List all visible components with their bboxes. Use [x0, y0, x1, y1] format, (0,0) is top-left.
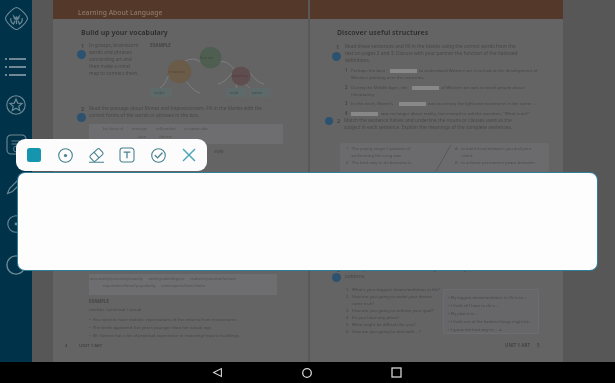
staticText: 1	[345, 67, 348, 73]
button[interactable]: Eraser	[83, 142, 109, 168]
staticText: sculpt	[154, 90, 165, 95]
button[interactable]: Brush size	[6, 214, 26, 234]
staticText: 1	[81, 42, 85, 49]
button[interactable]: Pen	[52, 142, 78, 168]
button[interactable]: Navigation item	[5, 72, 28, 78]
staticText: • You need to have realistic expectation…	[89, 316, 241, 338]
staticText: of Western art was to teach people about	[441, 84, 525, 90]
staticText: EXAMPLE	[150, 42, 171, 48]
staticText: Read these sentences and fill in the bla…	[345, 43, 518, 64]
staticText: • My biggest dream/ambition in life is t…	[448, 295, 533, 332]
button[interactable]: Notes	[5, 133, 27, 155]
staticText: Learning About Language	[78, 8, 163, 17]
staticText: creativity	[168, 69, 186, 74]
staticText: 1 The young singer's passion of performi…	[346, 146, 412, 165]
staticText: EXAMPLE	[89, 298, 109, 304]
button[interactable]: Pen tool	[4, 175, 26, 197]
staticText: During the Middle Ages, the	[351, 84, 408, 90]
button[interactable]: Text	[114, 142, 140, 168]
button[interactable]: Home	[295, 362, 319, 383]
staticText: Perhaps the best	[351, 67, 386, 73]
staticText: 2	[345, 84, 348, 90]
staticText: Match the sentence halves and underline …	[344, 117, 513, 131]
button[interactable]: Close	[176, 142, 202, 168]
staticText: Build up your vocabulary	[81, 28, 168, 38]
staticText: was no longer about reality, but instead…	[381, 110, 531, 116]
button[interactable]: Note canvas	[18, 173, 597, 270]
staticText: 2	[81, 105, 85, 112]
button[interactable]: Recents	[384, 362, 408, 383]
staticText: UNIT 1 ART 5	[505, 342, 540, 348]
button[interactable]: Eraser	[5, 254, 27, 276]
staticText: fine art	[200, 55, 214, 60]
staticText: 2	[337, 117, 341, 124]
button[interactable]: Navigation item	[5, 64, 28, 70]
staticText: Claude Monet was a French painter who pa…	[83, 148, 225, 170]
staticText: In groups, brainstorm words and phrases …	[89, 42, 139, 77]
staticText: be fond of emerge influential in particu…	[103, 126, 209, 139]
button[interactable]: Back	[205, 362, 229, 383]
button[interactable]: App logo	[3, 5, 29, 31]
button[interactable]: Done	[145, 142, 171, 168]
staticText: accurately/precisely/exactly rank/grade/…	[90, 276, 236, 289]
staticText: to understand Western art is to look at …	[419, 67, 538, 73]
staticText: 4	[345, 110, 348, 116]
staticText: 3	[337, 266, 341, 273]
staticText: Christianity.	[351, 91, 375, 97]
button[interactable]: Colour	[21, 142, 47, 168]
staticText: tools	[230, 90, 239, 95]
staticText: Discover useful structures	[337, 28, 429, 38]
staticText: was to convey the light and movement in …	[428, 100, 536, 106]
staticText: A to build trust between you and your cl…	[455, 146, 535, 165]
staticText: 1	[336, 43, 340, 50]
staticText: 4	[65, 343, 68, 349]
staticText: Western painting over the centuries.	[351, 74, 425, 80]
staticText: paints	[252, 90, 263, 95]
staticText: Work in pairs. Make conversations using …	[345, 266, 522, 280]
button[interactable]: Navigation item	[5, 56, 28, 62]
staticText: Read the passage about Monet and Impress…	[89, 105, 263, 119]
staticText: 3	[345, 100, 348, 106]
button[interactable]: Favourites	[5, 94, 27, 116]
staticText: realistic / practical / actual	[89, 306, 142, 312]
staticText: painting	[232, 73, 248, 78]
staticText: In this work, Monet's	[351, 100, 394, 106]
staticText: UNIT 1 ART	[79, 343, 103, 349]
staticText: 1 What's your biggest dream/ambition in …	[346, 286, 440, 334]
